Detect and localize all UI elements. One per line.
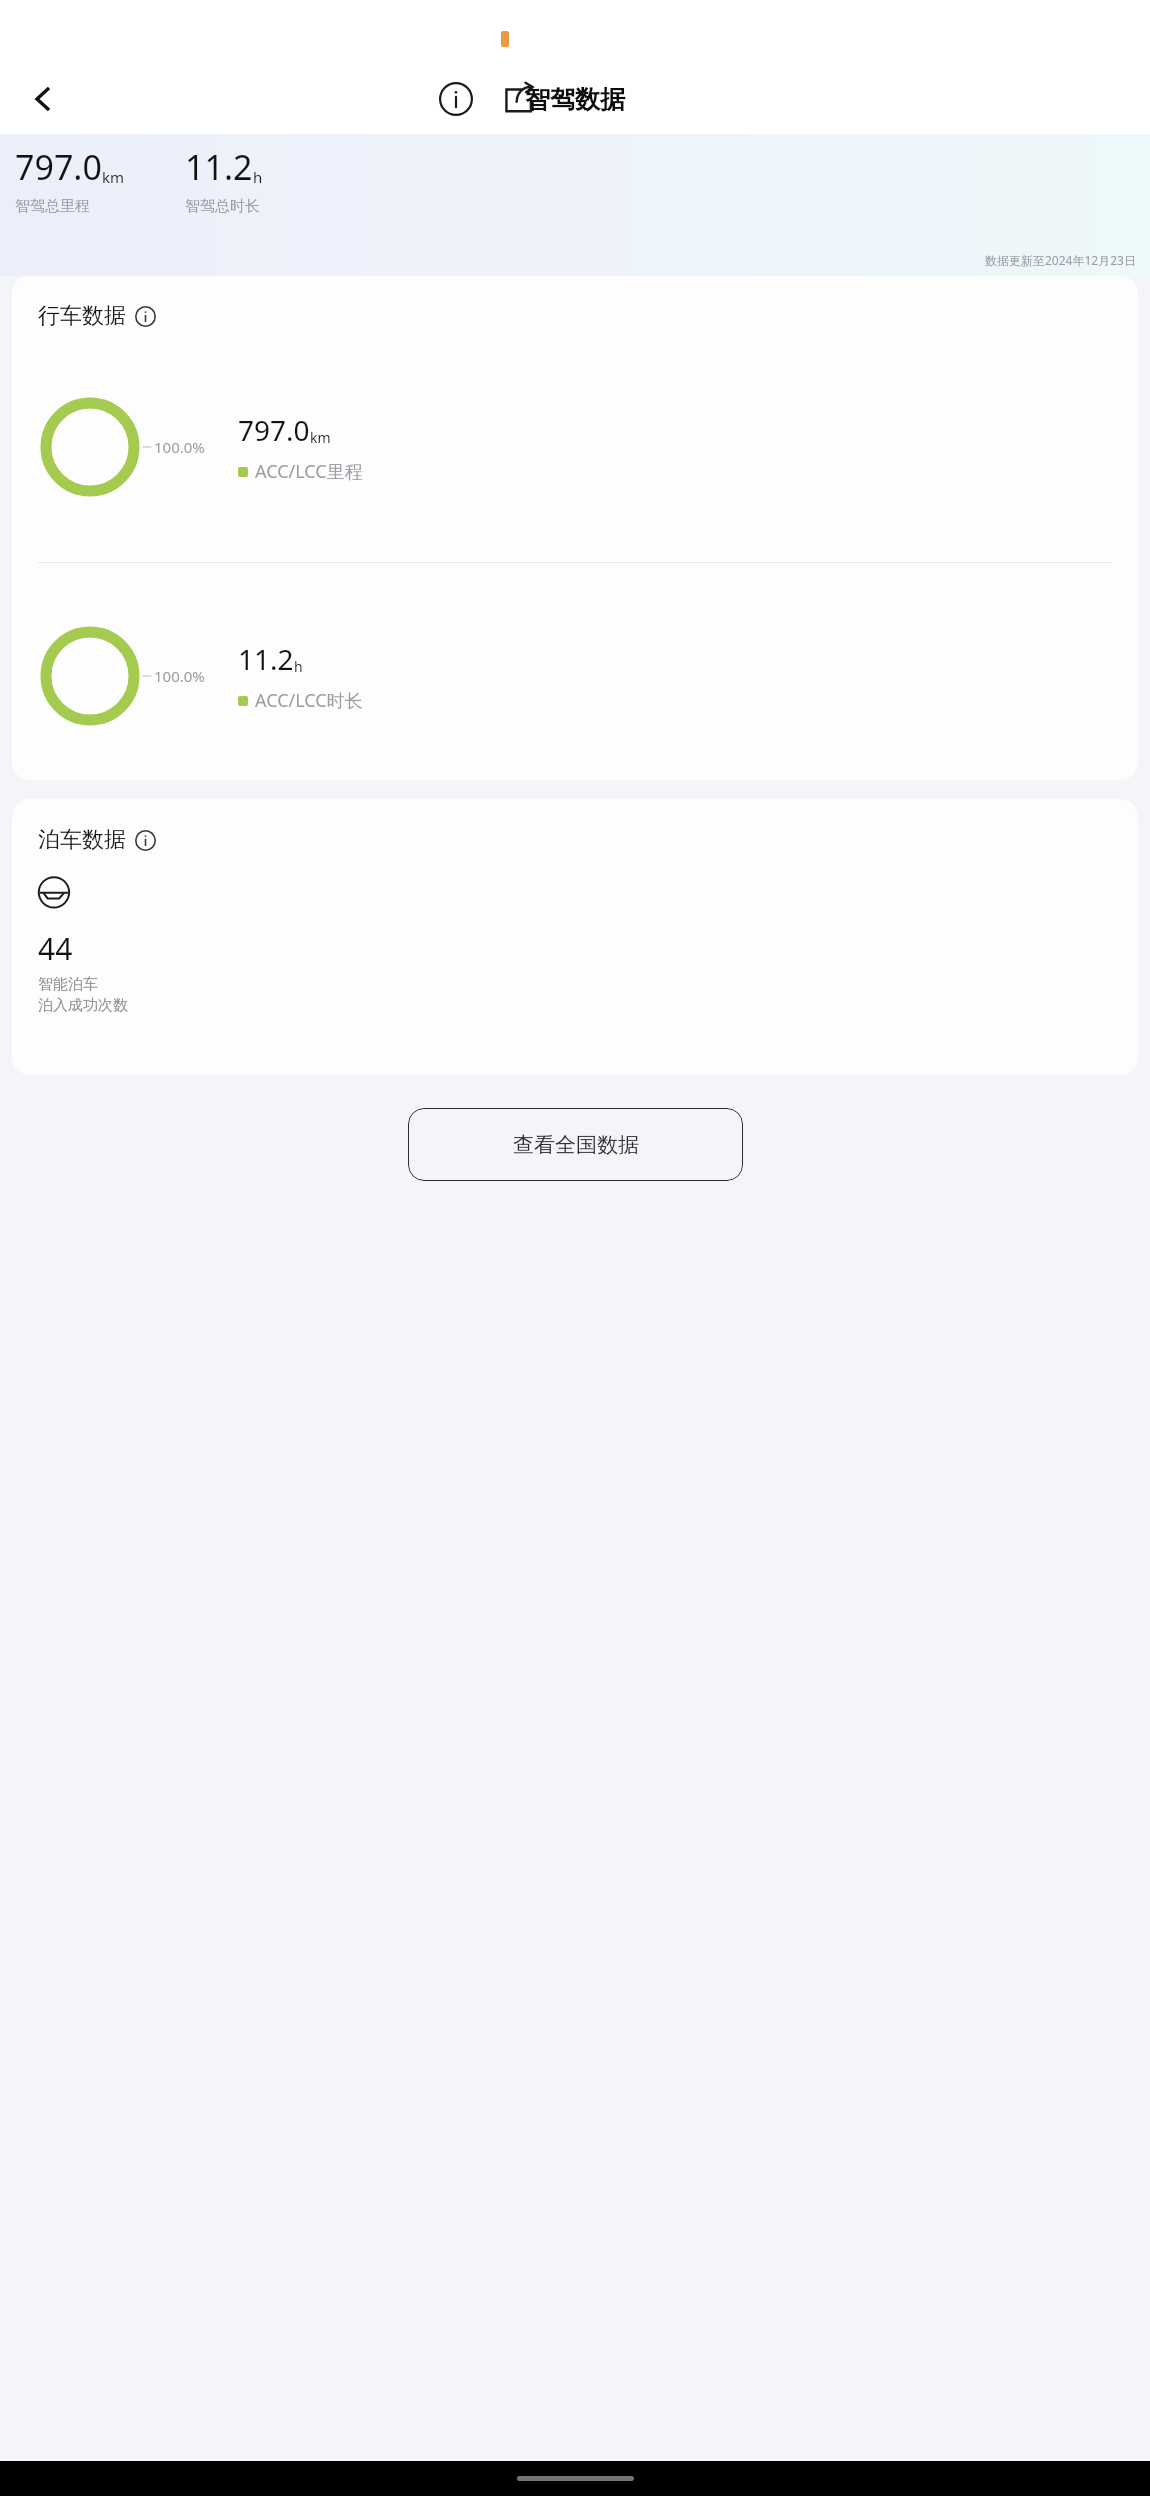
staticText: 797.0 <box>238 411 310 449</box>
staticText: 泊车数据 <box>38 826 126 854</box>
staticText: h <box>294 657 303 676</box>
staticText: 数据更新至2024年12月23日 <box>985 252 1136 268</box>
staticText: ACC/LCC里程 <box>255 459 363 484</box>
staticText: 797.0 <box>15 144 102 190</box>
staticText: 智驾总时长 <box>185 197 260 216</box>
staticText: 智驾总里程 <box>15 197 90 216</box>
staticText: ACC/LCC时长 <box>255 688 363 713</box>
staticText: 11.2 <box>238 640 294 678</box>
other: Info <box>135 830 156 851</box>
staticText: km <box>310 428 331 447</box>
staticText: 11.2 <box>185 144 253 190</box>
button[interactable]: Back <box>14 70 72 128</box>
button[interactable]: 查看全国数据 <box>408 1108 743 1181</box>
staticText: km <box>102 167 125 187</box>
button[interactable]: Information <box>429 72 483 126</box>
other: Info <box>135 306 156 327</box>
staticText: 智能泊车 <box>38 975 98 994</box>
staticText: 100.0% <box>154 666 205 686</box>
other: AI parking <box>38 876 76 914</box>
button[interactable]: 泊车数据 <box>38 826 156 854</box>
staticText: 查看全国数据 <box>513 1132 639 1158</box>
staticText: h <box>253 167 263 187</box>
staticText: 44 <box>38 928 73 969</box>
button[interactable]: Share <box>491 72 545 126</box>
staticText: 智驾数据 <box>525 84 625 115</box>
staticText: 行车数据 <box>38 302 126 330</box>
button[interactable]: 行车数据 <box>38 302 156 330</box>
staticText: 泊入成功次数 <box>38 996 128 1015</box>
staticText: 100.0% <box>154 437 205 457</box>
